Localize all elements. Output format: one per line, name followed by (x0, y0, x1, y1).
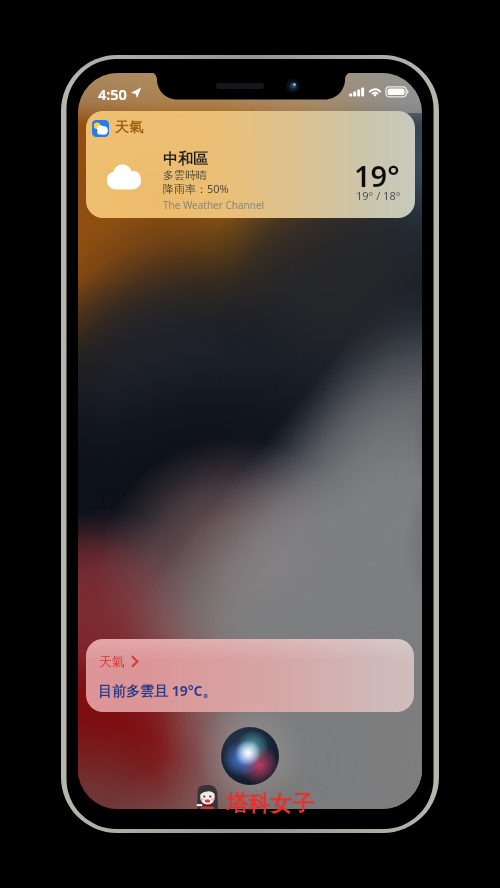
staticText: 塔科女子 (226, 790, 314, 818)
staticText: 19° / 18° (356, 188, 401, 203)
staticText: 中和區 (163, 150, 208, 169)
button[interactable] (86, 111, 415, 218)
button[interactable] (86, 639, 414, 712)
staticText: 降雨率：50% (163, 181, 229, 196)
staticText: The Weather Channel (163, 198, 265, 212)
button[interactable]: Siri (221, 727, 279, 785)
staticText: 多雲時晴 (163, 168, 207, 182)
staticText: 19° (354, 156, 400, 195)
staticText: 4:50 (98, 84, 127, 104)
staticText: 天氣 (99, 653, 125, 669)
staticText: 目前多雲且 19°C。 (98, 681, 217, 700)
staticText: 天氣 (115, 119, 143, 137)
